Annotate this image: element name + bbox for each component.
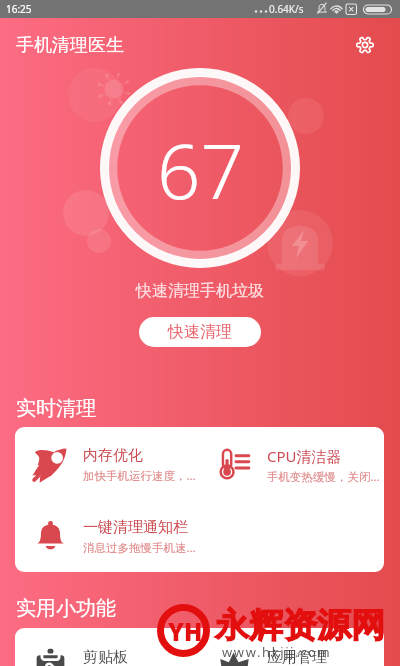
staticText: 内存优化 — [83, 446, 143, 465]
staticText: 消息过多拖慢手机速… — [83, 540, 196, 556]
button[interactable]: 应用管理 — [199, 628, 384, 666]
staticText: 快速清理手机垃圾 — [136, 281, 264, 301]
staticText: 手机清理医生 — [16, 34, 124, 57]
staticText: YH — [168, 615, 203, 648]
staticText: 应用管理 — [267, 648, 327, 666]
staticText: 剪贴板 — [83, 648, 128, 666]
staticText: 加快手机运行速度，… — [83, 468, 196, 484]
staticText: 一键清理通知栏 — [83, 518, 188, 537]
button[interactable]: CPU清洁器 — [199, 427, 384, 499]
staticText: 永辉资源网 — [215, 604, 385, 647]
button[interactable]: 内存优化 — [15, 427, 199, 499]
button[interactable]: 剪贴板 — [15, 628, 199, 666]
button[interactable]: 一键清理通知栏 — [15, 499, 199, 571]
button[interactable]: 快速清理 — [139, 317, 261, 347]
staticText: 实时清理 — [16, 396, 96, 421]
staticText: 0.64K/s — [269, 2, 304, 16]
staticText: CPU清洁器 — [267, 446, 342, 466]
staticText: 实用小功能 — [16, 596, 116, 621]
staticText: 快速清理 — [168, 322, 232, 342]
button[interactable]: Settings — [350, 30, 380, 60]
staticText: www.hkjjj.com — [222, 643, 332, 661]
staticText: 67 — [157, 118, 244, 222]
staticText: 手机变热缓慢，关闭… — [267, 469, 380, 485]
staticText: 16:25 — [6, 2, 32, 16]
